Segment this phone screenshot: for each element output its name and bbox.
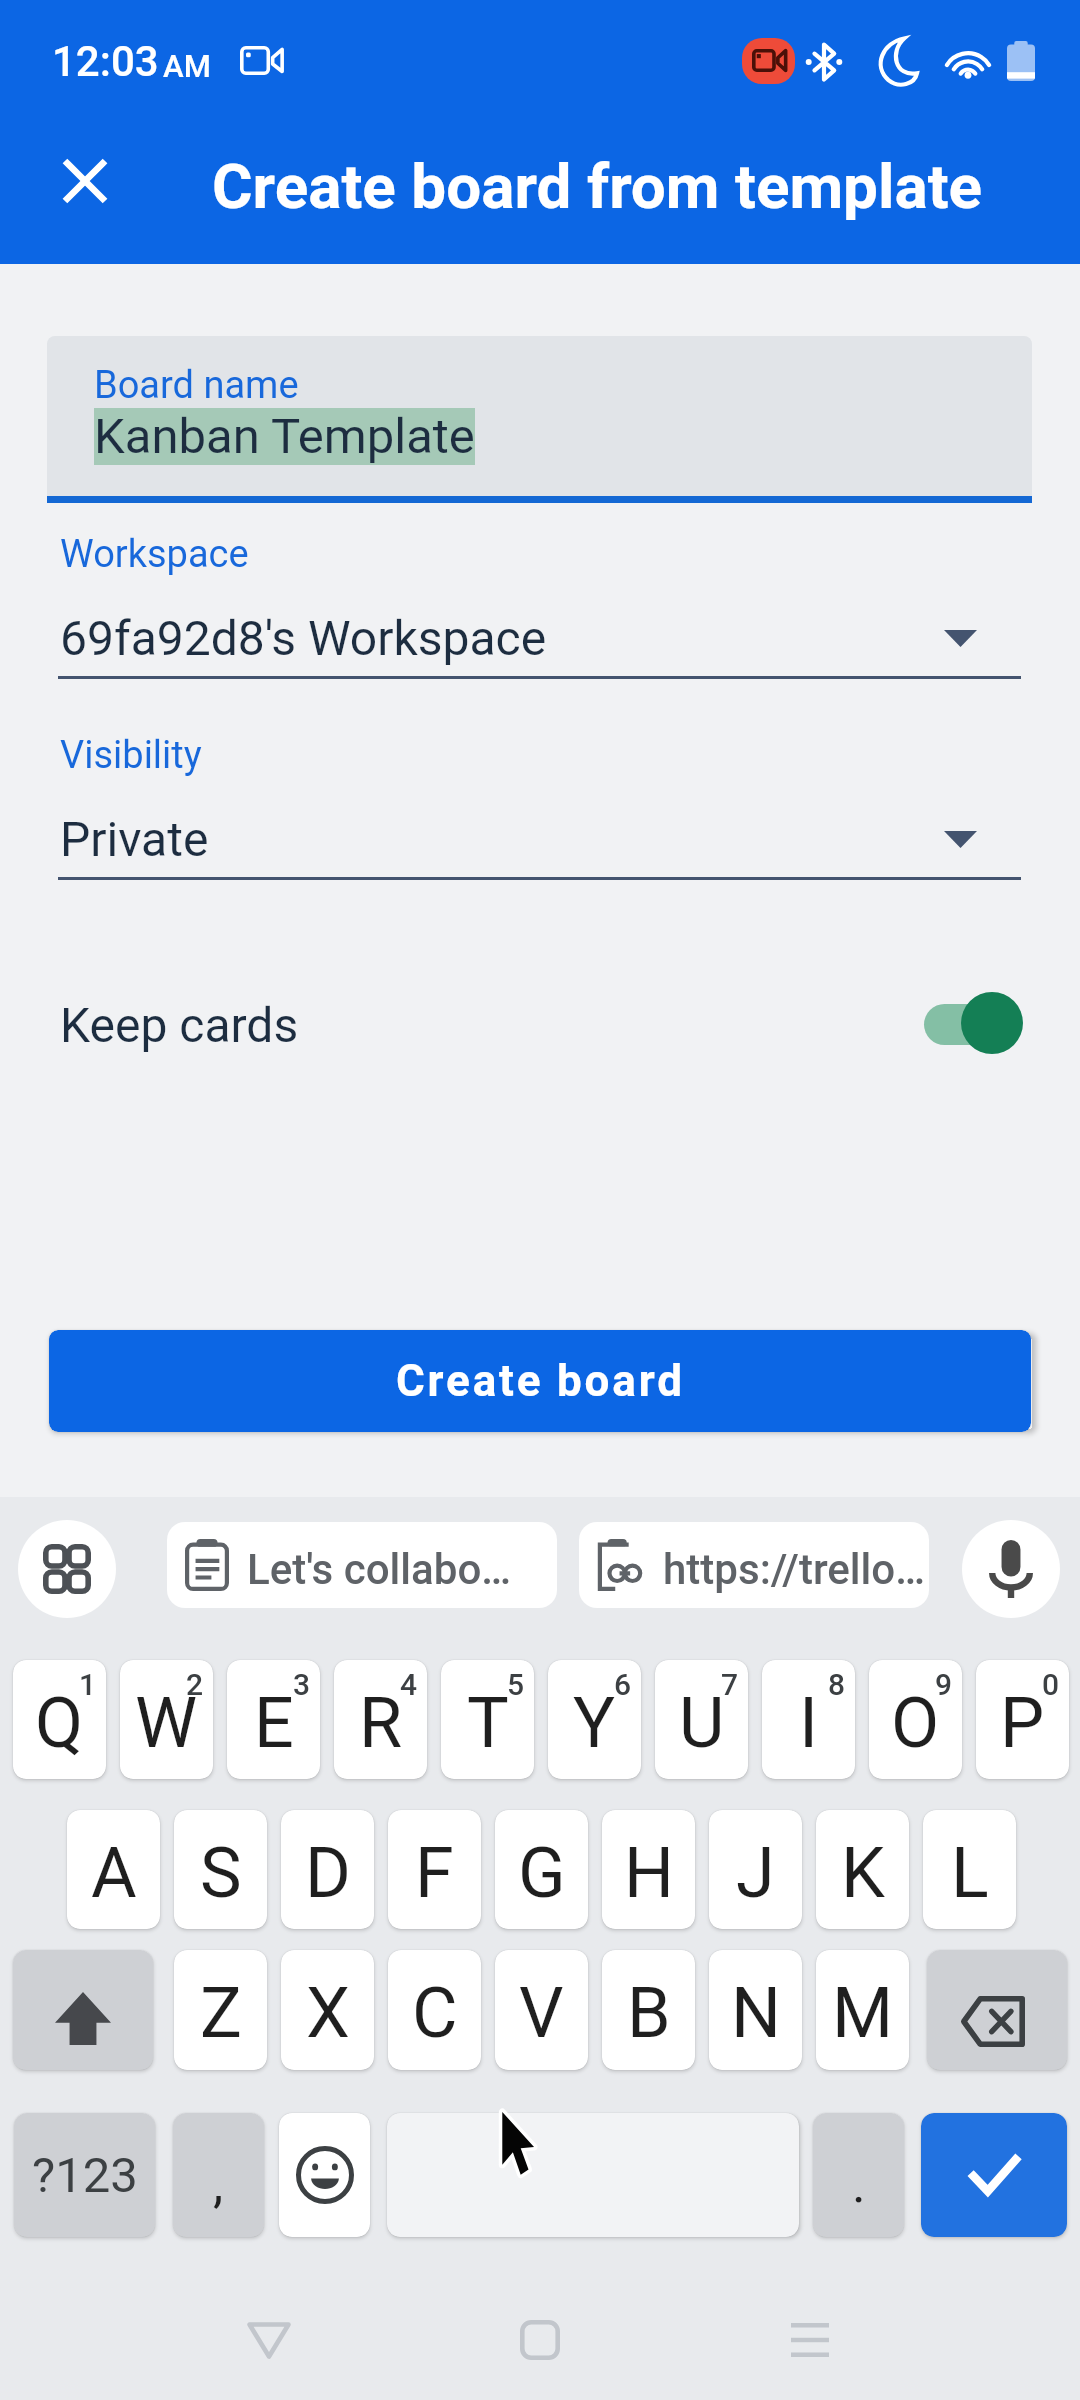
staticText: U [679, 1682, 725, 1764]
button[interactable]: I [762, 1660, 855, 1779]
staticText: I [799, 1682, 819, 1764]
button[interactable]: Close [35, 131, 135, 231]
staticText: N [731, 1972, 781, 2054]
staticText: Let's collabo… [247, 1545, 511, 1594]
staticText: 0 [1042, 1667, 1060, 1702]
staticText: C [412, 1972, 458, 2054]
button[interactable]: K [816, 1810, 909, 1929]
staticText: R [359, 1682, 403, 1764]
button[interactable]: Comma [173, 2113, 264, 2237]
staticText: Create board from template [212, 150, 983, 223]
staticText: E [254, 1682, 294, 1764]
button[interactable]: A [67, 1810, 160, 1929]
button[interactable]: Backspace [927, 1950, 1067, 2070]
staticText: 2 [186, 1667, 204, 1702]
button[interactable]: Q [13, 1660, 106, 1779]
button[interactable]: L [923, 1810, 1016, 1929]
staticText: X [306, 1972, 350, 2054]
staticText: S [200, 1832, 242, 1914]
button[interactable]: Shift [13, 1950, 153, 2070]
button[interactable]: Z [174, 1950, 267, 2070]
button[interactable]: F [388, 1810, 481, 1929]
button[interactable]: J [709, 1810, 802, 1929]
button[interactable]: Emoji [279, 2113, 370, 2237]
staticText: ?123 [32, 2147, 138, 2204]
button[interactable]: E [227, 1660, 320, 1779]
button[interactable]: Back [221, 2292, 317, 2388]
button[interactable]: U [655, 1660, 748, 1779]
staticText: . [852, 2154, 866, 2215]
button[interactable]: X [281, 1950, 374, 2070]
button[interactable]: B [602, 1950, 695, 2070]
staticText: Workspace [60, 532, 249, 577]
staticText: Board name [94, 363, 299, 408]
staticText: Create board [396, 1355, 685, 1407]
button[interactable]: D [281, 1810, 374, 1929]
staticText: Private [60, 811, 209, 867]
staticText: Y [573, 1682, 616, 1764]
staticText: 69fa92d8's Workspace [60, 610, 547, 666]
button[interactable]: Create board [49, 1330, 1031, 1432]
button[interactable]: C [388, 1950, 481, 2070]
staticText: B [627, 1972, 671, 2054]
staticText: M [832, 1972, 894, 2054]
button[interactable]: N [709, 1950, 802, 2070]
button[interactable]: Let's collabo… [167, 1522, 557, 1608]
staticText: J [736, 1832, 775, 1914]
staticText: 9 [935, 1667, 953, 1702]
staticText: K [841, 1832, 885, 1914]
staticText: Keep cards [60, 997, 299, 1053]
staticText: G [518, 1832, 566, 1914]
button[interactable]: V [495, 1950, 588, 2070]
staticText: 5 [507, 1667, 525, 1702]
staticText: P [1000, 1682, 1045, 1764]
button[interactable]: R [334, 1660, 427, 1779]
staticText: Q [35, 1682, 84, 1764]
staticText: W [135, 1682, 198, 1764]
staticText: Visibility [60, 733, 202, 778]
button[interactable]: S [174, 1810, 267, 1929]
staticText: A [91, 1832, 137, 1914]
staticText: 8 [828, 1667, 846, 1702]
button[interactable]: Private [47, 809, 1032, 889]
button[interactable]: Toolbar [18, 1520, 116, 1618]
button[interactable]: https://trello… [579, 1522, 929, 1608]
staticText: D [305, 1832, 351, 1914]
staticText: 3 [293, 1667, 311, 1702]
staticText: F [415, 1832, 454, 1914]
button[interactable]: Recent apps [762, 2292, 858, 2388]
staticText: T [467, 1682, 509, 1764]
button[interactable]: Home [492, 2292, 588, 2388]
button[interactable]: Space [387, 2113, 799, 2237]
button[interactable]: Period [813, 2113, 904, 2237]
staticText: O [891, 1682, 940, 1764]
staticText: 6 [614, 1667, 632, 1702]
button[interactable]: Y [548, 1660, 641, 1779]
button[interactable]: W [120, 1660, 213, 1779]
button[interactable]: H [602, 1810, 695, 1929]
staticText: 4 [400, 1667, 418, 1702]
staticText: H [624, 1832, 674, 1914]
staticText: 1 [79, 1667, 97, 1702]
staticText: 12:03 [52, 37, 159, 86]
button[interactable]: M [816, 1950, 909, 2070]
staticText: https://trello… [663, 1545, 925, 1594]
button[interactable]: G [495, 1810, 588, 1929]
button[interactable]: Symbols [14, 2113, 155, 2237]
staticText: , [213, 2154, 224, 2215]
button[interactable]: P [976, 1660, 1069, 1779]
button[interactable]: 69fa92d8's Workspace [47, 608, 1032, 688]
button[interactable]: T [441, 1660, 534, 1779]
button[interactable]: O [869, 1660, 962, 1779]
button[interactable]: Board name [47, 336, 1032, 496]
staticText: 7 [721, 1667, 739, 1702]
button[interactable]: Keep cards [47, 975, 1032, 1075]
staticText: Kanban Template [94, 408, 475, 465]
staticText: AM [163, 48, 211, 84]
staticText: L [951, 1832, 989, 1914]
button[interactable]: Done [921, 2113, 1067, 2237]
button[interactable]: Voice input [962, 1520, 1060, 1618]
staticText: Z [200, 1972, 242, 2054]
staticText: V [519, 1972, 564, 2054]
